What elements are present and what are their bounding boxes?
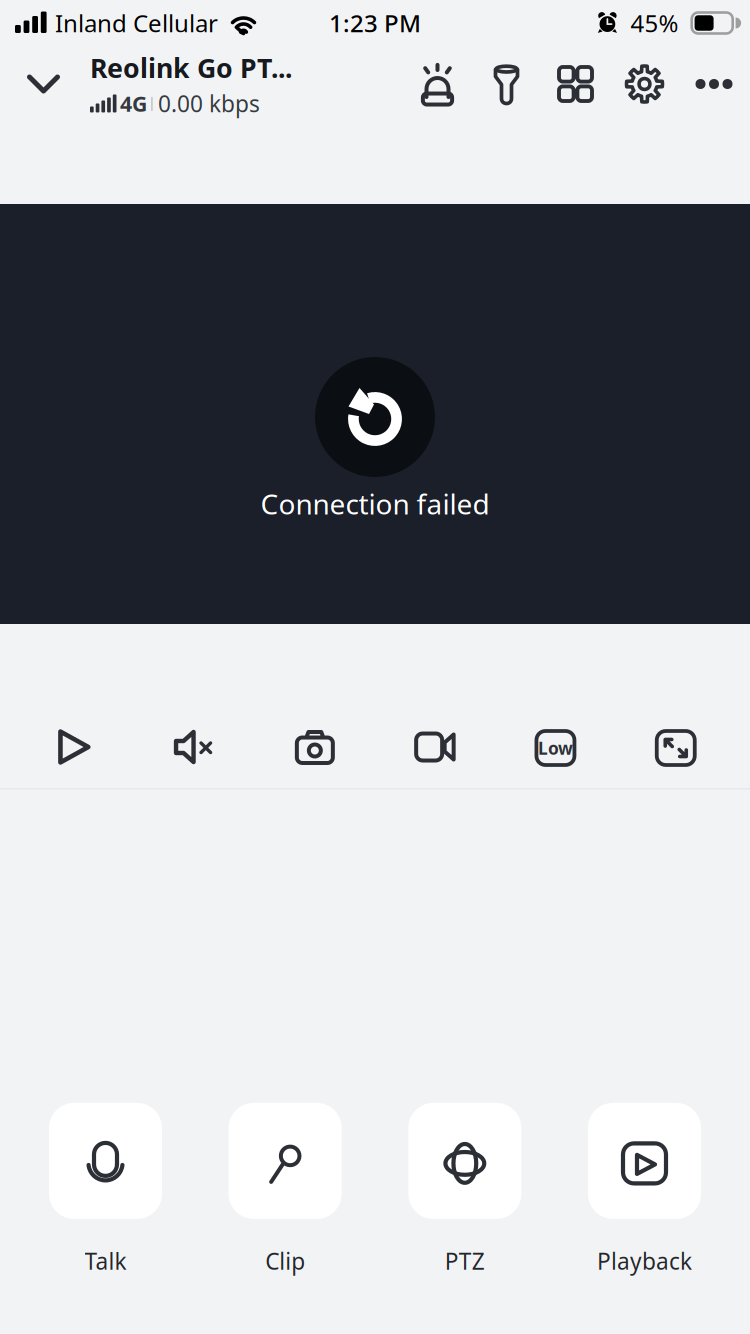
staticText: Playback <box>597 1246 692 1276</box>
staticText: 1:23 PM <box>329 7 421 39</box>
button[interactable]: Playback <box>588 1103 701 1276</box>
button[interactable]: Settings <box>610 46 679 132</box>
button[interactable]: Flashlight <box>472 46 541 132</box>
staticText: Reolink Go PT... <box>90 50 292 85</box>
button[interactable]: Clip <box>229 1103 342 1276</box>
button[interactable]: Layout <box>541 46 610 132</box>
button[interactable]: Play <box>14 624 134 788</box>
staticText: Talk <box>84 1246 126 1276</box>
staticText: Connection failed <box>260 485 489 522</box>
button[interactable]: Fullscreen <box>616 624 736 788</box>
staticText: Inland Cellular <box>55 7 218 39</box>
button[interactable]: Mute <box>134 624 255 788</box>
staticText: PTZ <box>445 1246 485 1276</box>
button[interactable]: Record <box>375 624 495 788</box>
staticText: 45% <box>630 7 678 39</box>
button[interactable]: Snapshot <box>255 624 375 788</box>
button[interactable]: More <box>679 46 749 132</box>
staticText: Low <box>538 736 573 759</box>
button[interactable]: Collapse <box>0 46 90 132</box>
staticText: 0.00 kbps <box>158 88 260 118</box>
button[interactable]: Retry connection <box>315 357 435 477</box>
button[interactable]: Talk <box>49 1103 162 1276</box>
button[interactable]: Siren <box>403 46 472 132</box>
staticText: Clip <box>265 1246 305 1276</box>
button[interactable]: PTZ <box>408 1103 521 1276</box>
button[interactable]: Quality Low <box>495 624 616 788</box>
staticText: 4G <box>120 89 147 118</box>
